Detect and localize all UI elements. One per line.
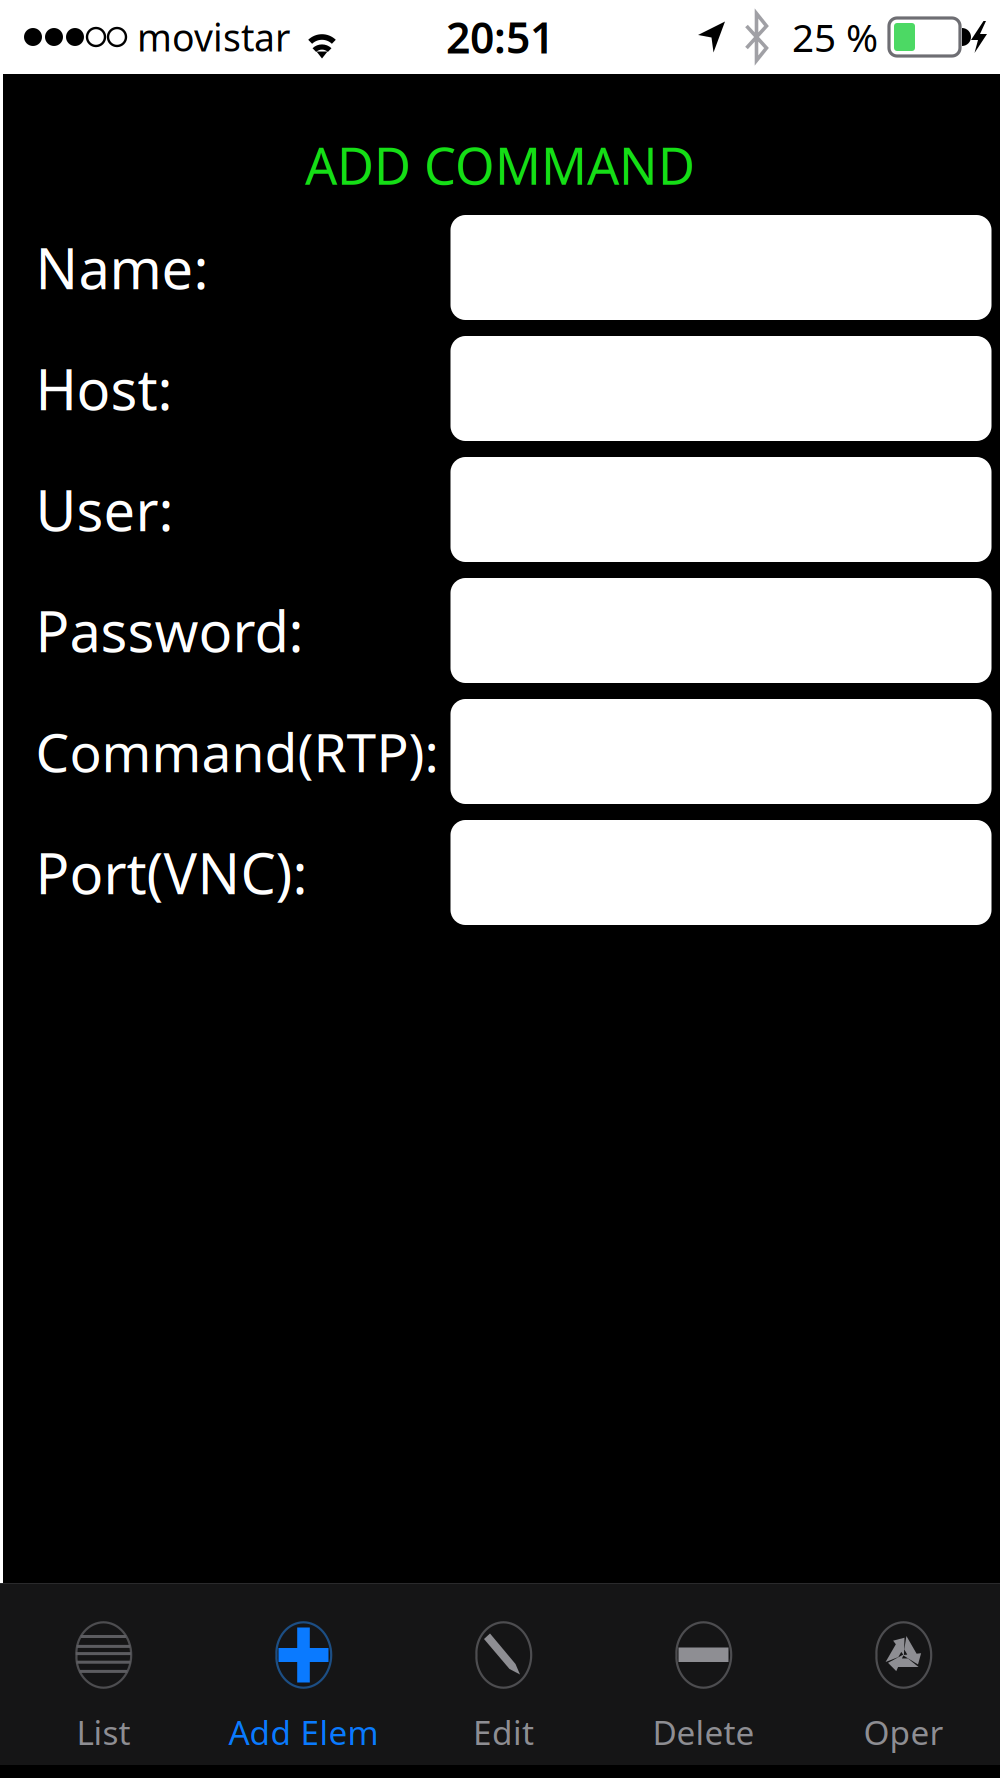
staticText: 20:51: [446, 9, 554, 65]
button[interactable]: Host:: [450, 336, 991, 441]
button[interactable]: Password:: [450, 578, 991, 683]
button[interactable]: Oper: [803, 1584, 1000, 1778]
staticText: List: [76, 1710, 130, 1754]
staticText: Edit: [473, 1710, 534, 1754]
staticText: Name:: [35, 230, 208, 305]
button[interactable]: Command(RTP):: [450, 699, 991, 804]
staticText: movistar: [137, 12, 290, 62]
button[interactable]: Name:: [450, 215, 991, 320]
button[interactable]: Edit: [403, 1584, 603, 1778]
button[interactable]: Add Elem: [203, 1584, 403, 1778]
staticText: Delete: [652, 1710, 754, 1754]
staticText: Command(RTP):: [35, 716, 438, 787]
button[interactable]: Delete: [603, 1584, 803, 1778]
staticText: User:: [35, 472, 173, 547]
staticText: Password:: [35, 593, 303, 668]
staticText: Host:: [35, 351, 172, 426]
staticText: 25 %: [792, 11, 878, 63]
button[interactable]: List: [3, 1584, 203, 1778]
button[interactable]: User:: [450, 457, 991, 562]
staticText: Add Elem: [228, 1710, 378, 1754]
staticText: ADD COMMAND: [305, 131, 695, 199]
button[interactable]: Port(VNC):: [450, 820, 991, 925]
staticText: Oper: [863, 1710, 943, 1754]
staticText: Port(VNC):: [35, 835, 307, 910]
